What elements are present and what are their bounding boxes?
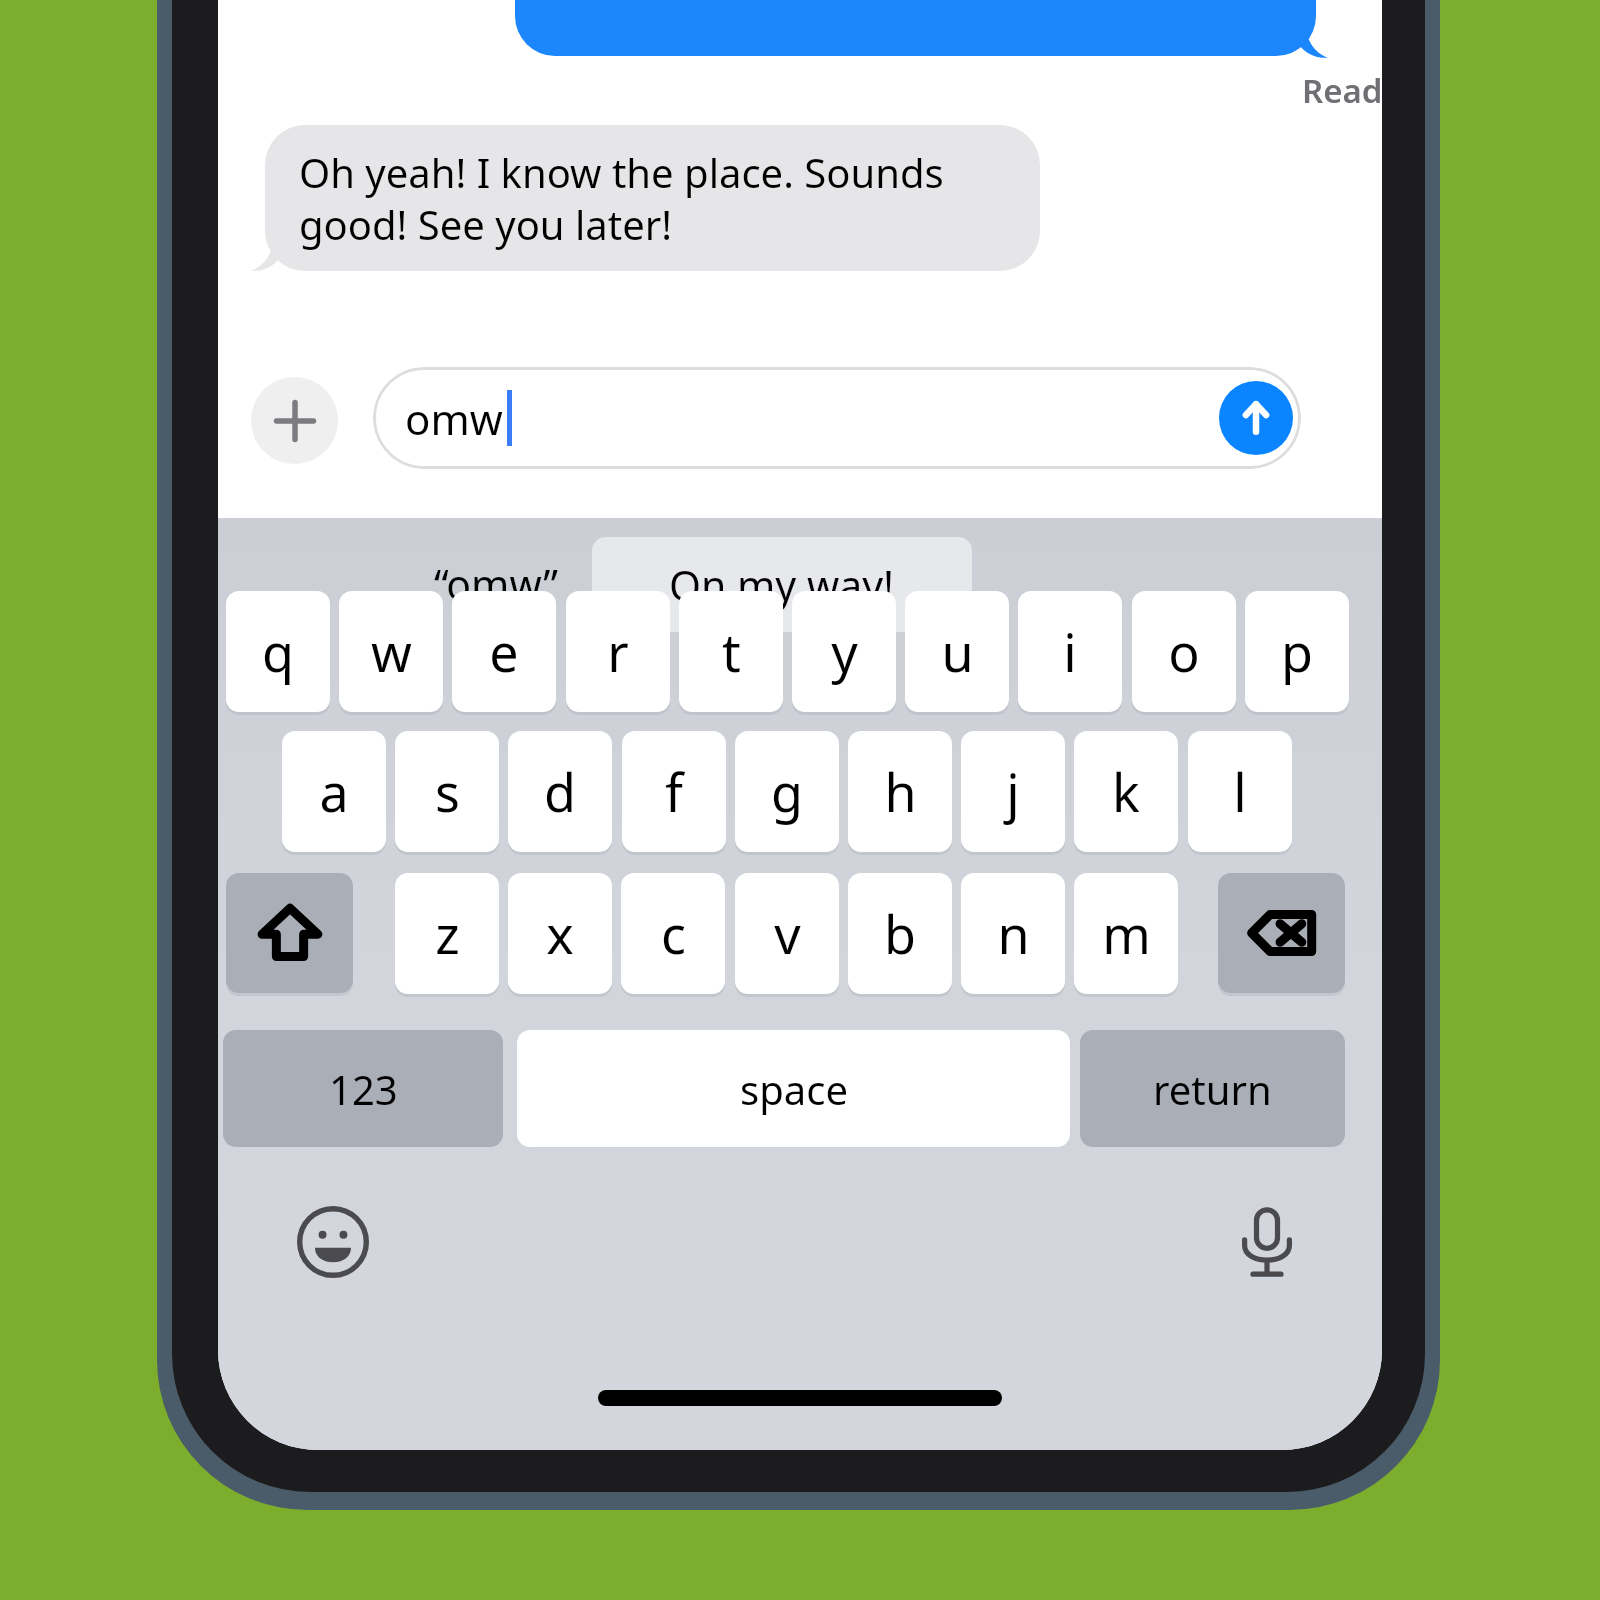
button[interactable]: o [1132, 591, 1236, 712]
staticText: o [1168, 616, 1200, 687]
staticText: f [665, 756, 683, 827]
staticText: h [884, 756, 917, 827]
staticText: g [771, 756, 803, 827]
button[interactable]: 123 [223, 1030, 503, 1147]
button[interactable]: Emoji keyboard [291, 1200, 375, 1284]
button[interactable]: space [517, 1030, 1070, 1147]
button[interactable]: Hey, what's that cafe within walking dis… [515, 0, 1316, 56]
button[interactable]: v [735, 873, 839, 994]
staticText: s [435, 756, 460, 827]
staticText: t [722, 616, 741, 687]
staticText: d [544, 756, 576, 827]
button[interactable]: u [905, 591, 1009, 712]
button[interactable]: p [1245, 591, 1349, 712]
button[interactable]: On my way! [592, 537, 972, 632]
staticText: v [774, 898, 801, 969]
staticText: z [435, 898, 460, 969]
staticText: On my way! [669, 557, 895, 613]
button[interactable]: Send [1219, 381, 1293, 455]
staticText: a [319, 756, 349, 827]
staticText: 123 [329, 1062, 398, 1116]
button[interactable]: Oh yeah! I know the place. Sounds good! … [265, 125, 1040, 271]
staticText: r [607, 616, 629, 687]
button[interactable]: Delete [1218, 873, 1345, 993]
button[interactable]: return [1080, 1030, 1345, 1147]
button[interactable]: Add attachment [251, 377, 338, 464]
button[interactable]: m [1074, 873, 1178, 994]
staticText: p [1281, 616, 1313, 687]
button[interactable]: “omw” [346, 518, 646, 650]
staticText: j [1006, 756, 1020, 827]
staticText: l [1233, 756, 1247, 827]
button[interactable]: b [848, 873, 952, 994]
staticText: c [661, 898, 686, 969]
button[interactable]: y [792, 591, 896, 712]
staticText: x [546, 898, 574, 969]
button[interactable]: j [961, 731, 1065, 852]
staticText: q [262, 616, 294, 687]
button[interactable]: e [452, 591, 556, 712]
staticText: k [1112, 756, 1140, 827]
staticText: “omw” [434, 556, 558, 612]
staticText: omw [405, 390, 503, 447]
button[interactable]: h [848, 731, 952, 852]
staticText: Read [1302, 68, 1382, 113]
button[interactable]: d [508, 731, 612, 852]
button[interactable]: f [622, 731, 726, 852]
button[interactable]: q [226, 591, 330, 712]
button[interactable]: r [566, 591, 670, 712]
staticText: space [740, 1062, 848, 1116]
button[interactable]: s [395, 731, 499, 852]
button[interactable]: n [961, 873, 1065, 994]
staticText: b [884, 898, 916, 969]
staticText: Oh yeah! I know the place. Sounds good! … [299, 145, 1010, 252]
button[interactable]: Dictation [1225, 1200, 1309, 1284]
button[interactable]: t [679, 591, 783, 712]
staticText: n [997, 898, 1030, 969]
button[interactable]: k [1074, 731, 1178, 852]
button[interactable]: g [735, 731, 839, 852]
button[interactable]: Shift [226, 873, 353, 993]
button[interactable]: a [282, 731, 386, 852]
staticText: w [371, 616, 412, 687]
button[interactable]: l [1188, 731, 1292, 852]
staticText: return [1153, 1062, 1272, 1116]
staticText: u [941, 616, 974, 687]
button[interactable]: i [1018, 591, 1122, 712]
button[interactable]: x [508, 873, 612, 994]
staticText: i [1063, 616, 1077, 687]
button[interactable]: w [339, 591, 443, 712]
staticText: m [1102, 898, 1151, 969]
staticText: e [489, 616, 519, 687]
staticText: y [831, 616, 858, 687]
button[interactable]: omw [373, 367, 1301, 469]
button[interactable]: z [395, 873, 499, 994]
button[interactable]: c [621, 873, 725, 994]
